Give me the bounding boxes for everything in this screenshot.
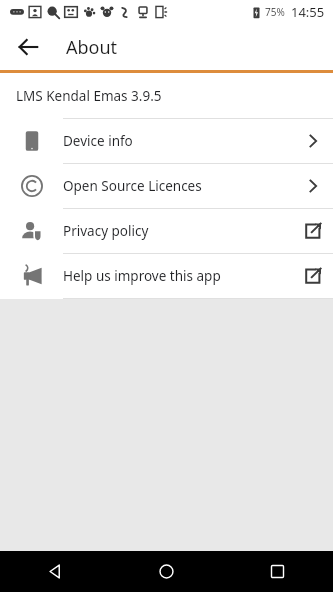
button[interactable]: Recent apps xyxy=(222,551,333,592)
button[interactable]: Device info xyxy=(0,119,333,163)
button[interactable]: Privacy policy xyxy=(0,209,333,253)
staticText: About xyxy=(66,35,118,60)
button[interactable]: Help us improve this app xyxy=(0,254,333,298)
staticText: Device info xyxy=(63,132,293,150)
staticText: LMS Kendal Emas 3.9.5 xyxy=(16,87,162,105)
staticText: Open Source Licences xyxy=(63,177,293,195)
button[interactable]: Back xyxy=(8,27,48,67)
staticText: 14:55 xyxy=(291,3,325,21)
staticText: 75% xyxy=(265,5,285,19)
button[interactable]: Open Source Licences xyxy=(0,164,333,208)
staticText: Help us improve this app xyxy=(63,267,293,285)
staticText: Privacy policy xyxy=(63,222,293,240)
button[interactable]: Home xyxy=(111,551,222,592)
button[interactable]: Back xyxy=(0,551,111,592)
